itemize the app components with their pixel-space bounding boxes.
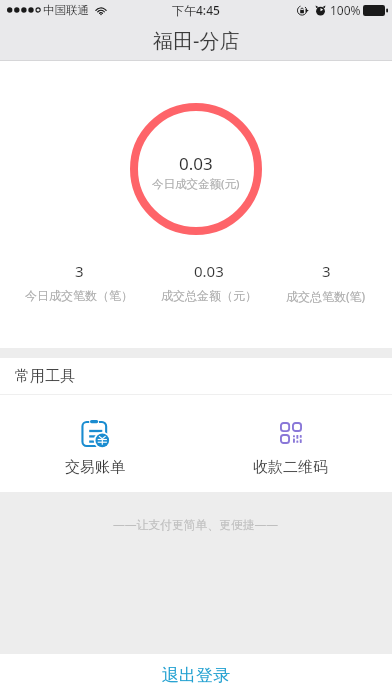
staticText: 常用工具 <box>15 367 75 386</box>
staticText: 中国联通 <box>43 3 89 17</box>
button[interactable]: 退出登录 <box>0 654 392 696</box>
staticText: 收款二维码 <box>253 458 328 477</box>
staticText: 成交总笔数(笔) <box>286 288 366 304</box>
staticText: 交易账单 <box>65 458 125 477</box>
staticText: 福田-分店 <box>153 27 240 54</box>
staticText: 0.03 <box>179 152 213 175</box>
staticText: 3 <box>322 261 331 281</box>
staticText: 成交总金额（元） <box>161 288 257 303</box>
button[interactable]: 交易账单 <box>0 395 190 492</box>
staticText: 3 <box>75 261 84 281</box>
staticText: 退出登录 <box>162 665 230 686</box>
staticText: 今日成交金额(元) <box>152 176 240 192</box>
staticText: 100% <box>330 2 361 18</box>
staticText: 下午4:45 <box>172 2 220 18</box>
staticText: ——让支付更简单、更便捷—— <box>113 516 279 532</box>
button[interactable]: 收款二维码 <box>190 395 391 492</box>
staticText: 0.03 <box>194 261 224 281</box>
staticText: 今日成交笔数（笔） <box>25 288 133 303</box>
